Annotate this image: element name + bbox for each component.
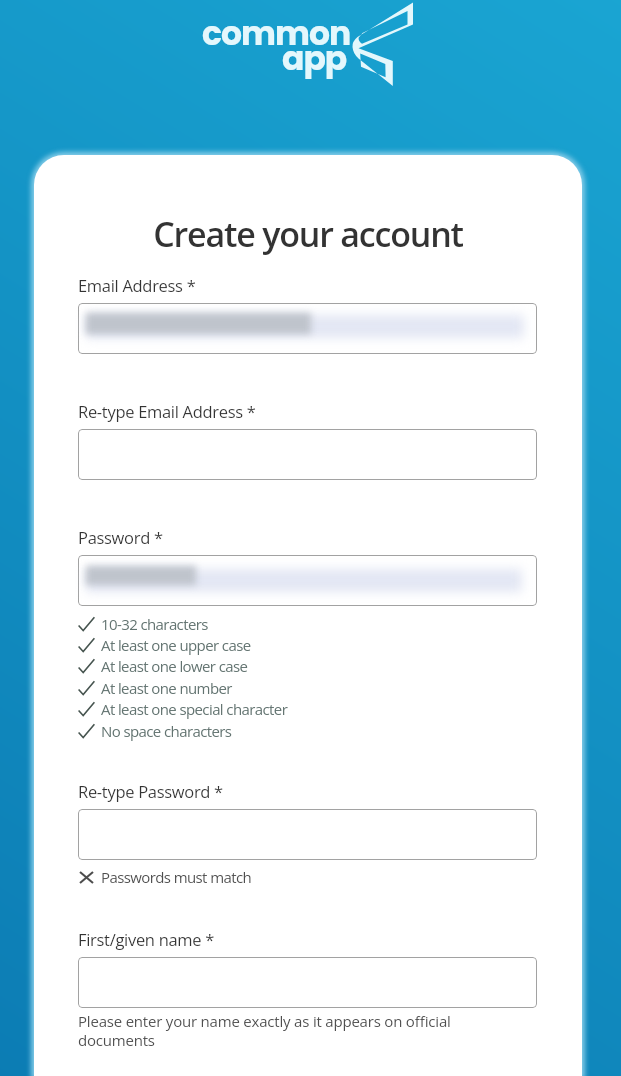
staticText: Re-type Password * [78, 780, 223, 802]
staticText: At least one special character [101, 699, 288, 719]
staticText: 10-32 characters [101, 614, 208, 634]
staticText: At least one upper case [101, 635, 251, 655]
staticText: Please enter your name exactly as it app… [78, 1011, 460, 1050]
staticText: At least one number [101, 678, 232, 698]
staticText: First/given name * [78, 928, 215, 950]
button[interactable] [78, 957, 537, 1008]
other: Common App logo [345, 0, 420, 95]
button[interactable] [78, 555, 537, 606]
staticText: Create your account [34, 211, 582, 257]
staticText: Re-type Email Address * [78, 400, 256, 422]
button[interactable] [78, 303, 537, 354]
staticText: No space characters [101, 721, 232, 741]
staticText: At least one lower case [101, 656, 248, 676]
button[interactable] [78, 429, 537, 480]
staticText: Passwords must match [101, 867, 252, 887]
staticText: Password * [78, 526, 163, 548]
button[interactable] [78, 809, 537, 860]
staticText: common [202, 10, 351, 56]
staticText: app [282, 35, 347, 81]
staticText: Email Address * [78, 274, 196, 296]
